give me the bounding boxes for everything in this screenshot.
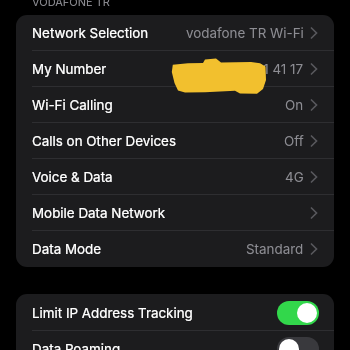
staticText: Calls on Other Devices <box>32 133 176 149</box>
staticText: Network Selection <box>32 25 149 41</box>
button[interactable]: Mobile Data Network <box>16 195 334 231</box>
button[interactable]: Toggle on <box>277 301 319 325</box>
button[interactable]: Toggle off <box>277 337 319 350</box>
button[interactable]: My Number <box>16 51 334 87</box>
staticText: Data Roaming <box>32 341 121 350</box>
staticText: +90 532 541 41 17 <box>189 61 304 77</box>
staticText: Data Mode <box>32 241 102 257</box>
staticText: Standard <box>246 241 304 257</box>
staticText: On <box>285 97 304 113</box>
button[interactable]: Network Selection <box>16 15 334 51</box>
staticText: Wi-Fi Calling <box>32 97 113 113</box>
staticText: Mobile Data Network <box>32 205 166 221</box>
button[interactable]: Voice & Data <box>16 159 334 195</box>
staticText: My Number <box>32 61 107 77</box>
button[interactable]: Data Roaming <box>16 331 334 350</box>
staticText: Limit IP Address Tracking <box>32 305 193 321</box>
button[interactable]: Data Mode <box>16 231 334 267</box>
staticText: 4G <box>285 169 304 185</box>
staticText: vodafone TR Wi-Fi <box>186 25 304 41</box>
button[interactable]: Calls on Other Devices <box>16 123 334 159</box>
button[interactable]: Limit IP Address Tracking <box>16 294 334 331</box>
button[interactable]: Wi-Fi Calling <box>16 87 334 123</box>
staticText: Voice & Data <box>32 169 113 185</box>
staticText: Off <box>284 133 304 149</box>
staticText: VODAFONE TR <box>32 0 110 8</box>
